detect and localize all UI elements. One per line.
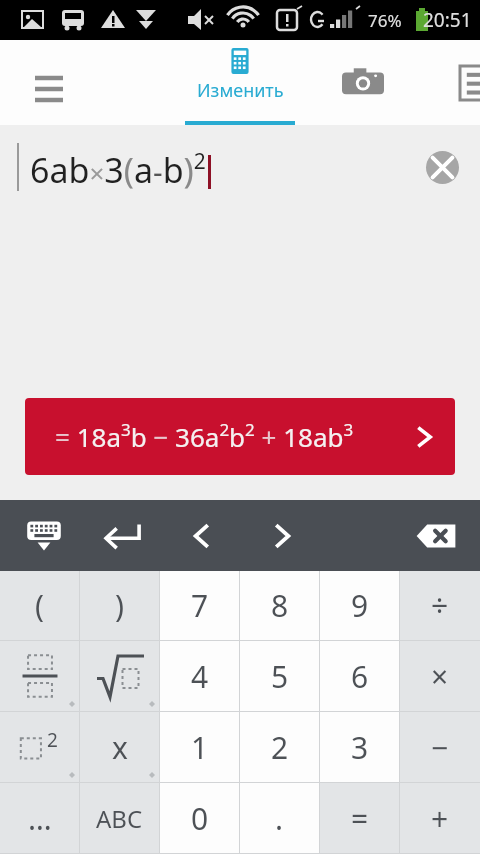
staticText: −: [431, 727, 449, 768]
button[interactable]: Hide keyboard: [8, 500, 80, 571]
button[interactable]: …: [0, 783, 79, 853]
staticText: 7: [191, 585, 209, 626]
staticText: x: [112, 727, 128, 768]
button[interactable]: History: [446, 52, 480, 114]
button[interactable]: 4: [160, 641, 239, 711]
button[interactable]: 7: [160, 571, 239, 640]
button[interactable]: −: [400, 712, 480, 782]
staticText: 4: [191, 656, 209, 697]
staticText: 5: [271, 656, 289, 697]
button[interactable]: Enter: [86, 500, 158, 571]
button[interactable]: +: [400, 783, 480, 853]
staticText: (: [35, 585, 44, 626]
button[interactable]: Backspace: [400, 500, 472, 571]
staticText: ABC: [96, 802, 143, 835]
button[interactable]: = 18a3b − 36a2b2 + 18ab3: [25, 398, 455, 475]
button[interactable]: ÷: [400, 571, 480, 640]
button[interactable]: 8: [240, 571, 319, 640]
button[interactable]: Camera: [332, 52, 394, 114]
staticText: 9: [351, 585, 369, 626]
button[interactable]: 5: [240, 641, 319, 711]
staticText: 20:51: [423, 7, 472, 33]
button[interactable]: ): [80, 571, 159, 640]
staticText: ): [115, 585, 124, 626]
button[interactable]: (: [0, 571, 79, 640]
staticText: 2: [271, 727, 289, 768]
staticText: 6: [351, 656, 369, 697]
staticText: 8: [271, 585, 289, 626]
button[interactable]: =: [320, 783, 399, 853]
staticText: 3: [351, 727, 369, 768]
staticText: 0: [191, 798, 209, 839]
button[interactable]: Изменить: [173, 40, 307, 125]
staticText: .: [275, 798, 284, 839]
button[interactable]: Fraction: [0, 641, 79, 711]
button[interactable]: ABC: [80, 783, 159, 853]
button[interactable]: 1: [160, 712, 239, 782]
button[interactable]: 2: [240, 712, 319, 782]
button[interactable]: 9: [320, 571, 399, 640]
button[interactable]: Clear: [420, 145, 464, 189]
button[interactable]: 6: [320, 641, 399, 711]
button[interactable]: .: [240, 783, 319, 853]
button[interactable]: ×: [400, 641, 480, 711]
button[interactable]: Move right: [246, 500, 318, 571]
staticText: 76%: [368, 9, 402, 32]
button[interactable]: 3: [320, 712, 399, 782]
staticText: 6ab×3(a-b)2: [30, 147, 206, 193]
staticText: …: [28, 798, 52, 839]
staticText: Изменить: [197, 78, 284, 103]
button[interactable]: Power: [0, 712, 79, 782]
staticText: 1: [191, 727, 209, 768]
staticText: = 18a3b − 36a2b2 + 18ab3: [55, 418, 354, 455]
button[interactable]: Menu: [18, 52, 80, 114]
staticText: +: [431, 798, 449, 839]
button[interactable]: Move left: [166, 500, 238, 571]
staticText: =: [351, 798, 369, 839]
staticText: ×: [431, 656, 449, 697]
staticText: 2: [47, 727, 58, 753]
staticText: ÷: [431, 585, 449, 626]
button[interactable]: Square root: [80, 641, 159, 711]
button[interactable]: x: [80, 712, 159, 782]
button[interactable]: 0: [160, 783, 239, 853]
